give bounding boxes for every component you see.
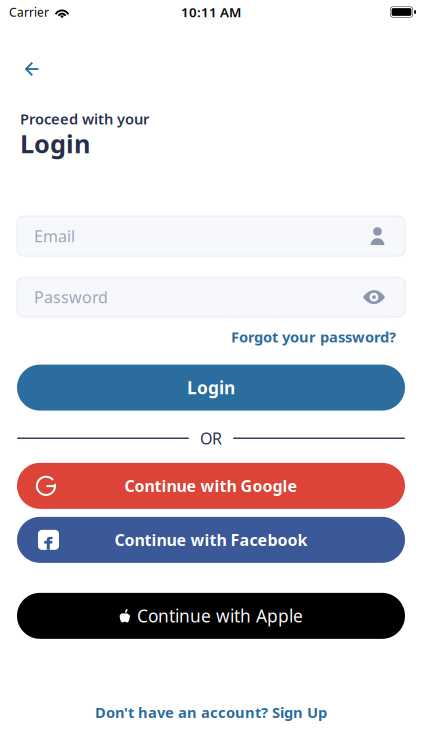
staticText: Continue with Apple — [137, 604, 303, 627]
staticText: Proceed with your — [20, 109, 149, 128]
button[interactable]: Forgot your password? — [231, 327, 396, 347]
button[interactable]: Back — [15, 51, 49, 87]
button[interactable]: Continue with Facebook — [17, 517, 405, 563]
button[interactable]: Continue with Google — [17, 463, 405, 509]
staticText: Continue with Google — [124, 475, 297, 496]
staticText: Carrier — [9, 4, 49, 20]
button[interactable]: Don't have an account? Sign Up — [95, 702, 327, 722]
staticText: Forgot your password? — [231, 327, 396, 347]
staticText: OR — [200, 428, 222, 449]
staticText: Continue with Facebook — [114, 529, 307, 550]
button[interactable]: Password — [17, 277, 405, 317]
button[interactable]: Email — [17, 216, 405, 256]
staticText: 10:11 AM — [181, 3, 241, 21]
staticText: Login — [20, 126, 90, 160]
staticText: Email — [34, 225, 75, 247]
staticText: Login — [187, 376, 235, 399]
staticText: Password — [34, 286, 108, 308]
button[interactable]: Continue with Apple — [17, 593, 405, 639]
staticText: Don't have an account? Sign Up — [95, 702, 327, 722]
button[interactable]: Login — [17, 365, 405, 411]
